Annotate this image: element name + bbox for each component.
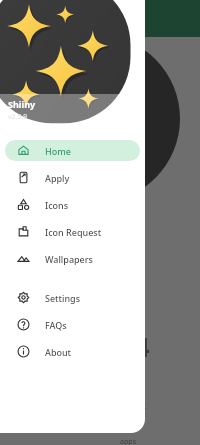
button[interactable]: Icons bbox=[5, 194, 140, 215]
button[interactable]: Icon Request bbox=[5, 221, 140, 242]
staticText: om icons bbox=[120, 370, 146, 378]
staticText: About bbox=[45, 346, 72, 358]
staticText: Home bbox=[45, 145, 71, 157]
button[interactable]: Wallpapers bbox=[5, 248, 140, 269]
staticText: v2.5.9 bbox=[8, 112, 28, 122]
staticText: Icon Request bbox=[45, 226, 102, 238]
button[interactable]: Settings bbox=[5, 287, 140, 308]
staticText: 74 bbox=[120, 329, 150, 364]
staticText: apps bbox=[120, 437, 137, 445]
button[interactable]: About bbox=[5, 341, 140, 362]
staticText: Settings bbox=[45, 292, 81, 304]
staticText: Shiiny bbox=[8, 98, 36, 110]
staticText: FAQs bbox=[45, 319, 67, 331]
button[interactable]: Apply bbox=[5, 167, 140, 188]
staticText: Wallpapers bbox=[45, 253, 93, 265]
staticText: Apply bbox=[45, 172, 70, 184]
staticText: equest bbox=[120, 400, 147, 411]
button[interactable]: FAQs bbox=[5, 314, 140, 335]
staticText: Icons bbox=[45, 199, 69, 211]
button[interactable]: Home bbox=[5, 140, 140, 161]
